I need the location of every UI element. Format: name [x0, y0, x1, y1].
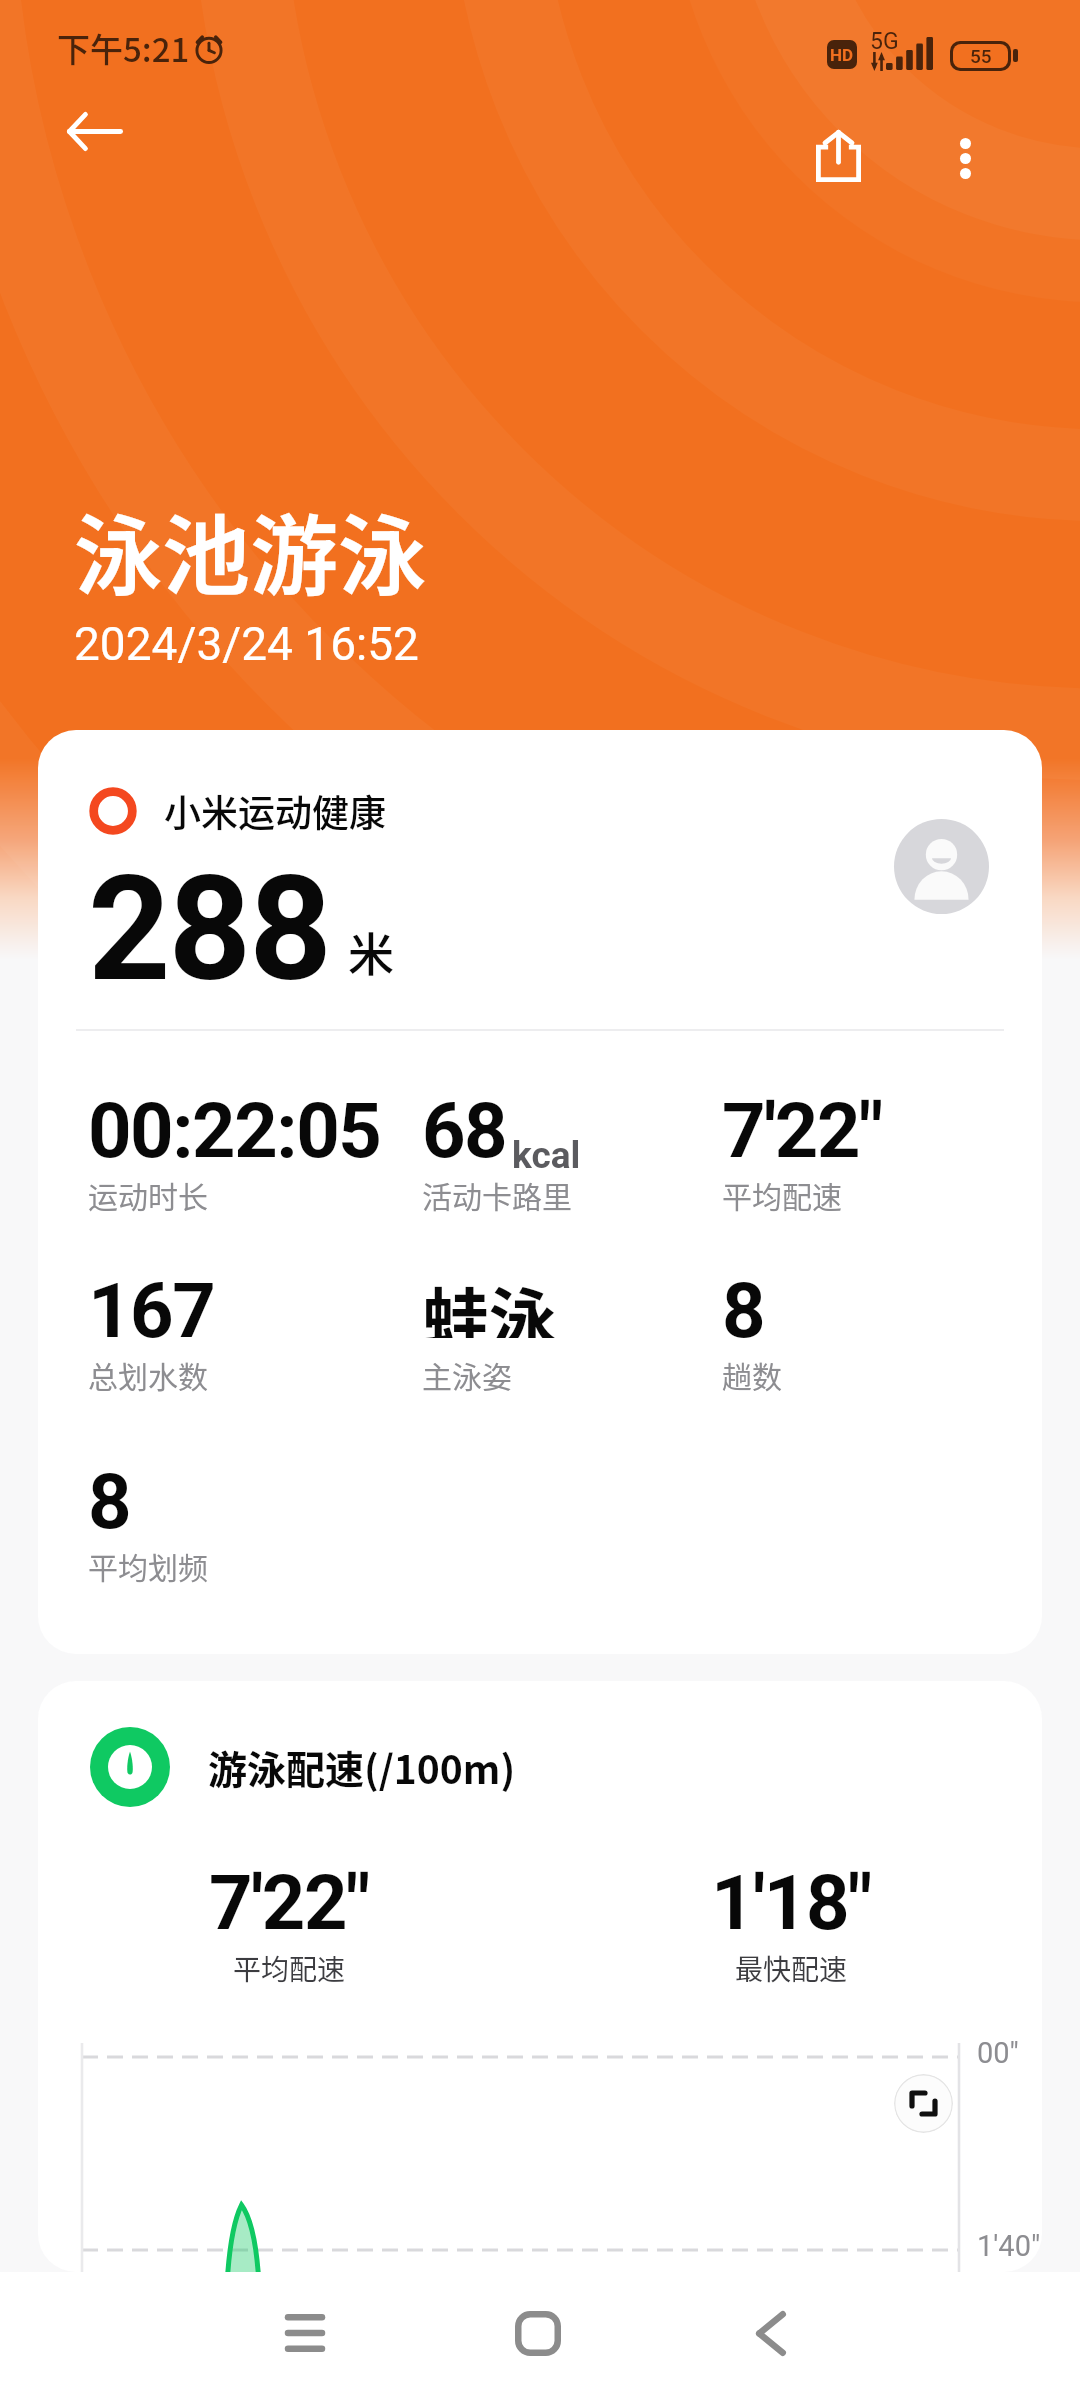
staticText: 活动卡路里 [422, 1173, 572, 1216]
button[interactable]: Back [706, 2272, 836, 2400]
staticText: 2024/3/24 16:52 [74, 617, 419, 671]
staticText: 8 [722, 1266, 765, 1338]
staticText: 泳池游泳 [74, 486, 427, 613]
staticText: 平均配速 [722, 1173, 842, 1216]
button[interactable]: Expand chart [894, 2074, 953, 2133]
staticText: 趟数 [722, 1353, 782, 1396]
staticText: 8 [88, 1457, 131, 1529]
staticText: 总划水数 [88, 1353, 208, 1396]
staticText: 5G [870, 28, 899, 55]
button[interactable]: Back [41, 77, 149, 185]
staticText: 下午5:21 [57, 24, 190, 72]
staticText: 游泳配速(/100m) [208, 1739, 516, 1795]
staticText: 平均划频 [88, 1544, 208, 1587]
staticText: 1'18" [711, 1858, 871, 1947]
staticText: 最快配速 [735, 1948, 848, 1989]
staticText: 1'40" [977, 2229, 1041, 2263]
staticText: 7'22" [722, 1086, 882, 1158]
button[interactable]: Share [784, 102, 892, 210]
staticText: 68 [422, 1086, 507, 1158]
staticText: 167 [88, 1266, 215, 1338]
staticText: 主泳姿 [422, 1353, 512, 1396]
staticText: kcal [512, 1134, 581, 1177]
staticText: 55 [970, 45, 992, 67]
staticText: 7'22" [209, 1858, 369, 1947]
staticText: 288 [88, 845, 330, 1014]
button[interactable]: More options [911, 104, 1019, 212]
staticText: HD [830, 45, 854, 65]
staticText: 平均配速 [233, 1948, 346, 1989]
staticText: 蛙泳 [422, 1266, 556, 1338]
staticText: 小米运动健康 [164, 784, 386, 838]
staticText: 米 [348, 918, 394, 985]
staticText: 运动时长 [88, 1173, 208, 1216]
button[interactable]: Home [473, 2272, 603, 2400]
staticText: 00" [977, 2036, 1019, 2070]
button[interactable]: Recent apps [240, 2272, 370, 2400]
staticText: 00:22:05 [88, 1086, 381, 1158]
